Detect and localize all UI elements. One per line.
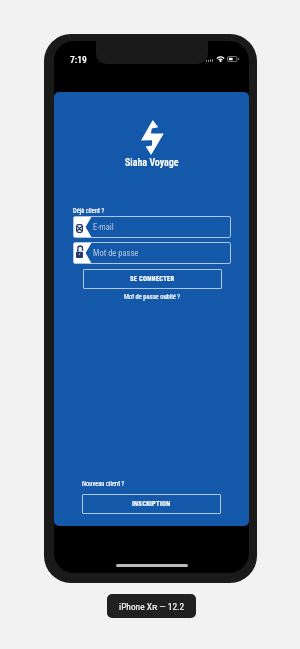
- button[interactable]: Email: [73, 216, 231, 238]
- button[interactable]: Password: [73, 242, 231, 264]
- staticText: Déjà client ?: [73, 207, 105, 215]
- staticText: SE CONNECTER: [130, 275, 175, 283]
- staticText: INSCRIPTION: [132, 500, 171, 508]
- staticText: Siaha Voyage: [125, 157, 179, 169]
- staticText: 7:19: [70, 54, 87, 65]
- staticText: iPhone Xʀ — 12.2: [119, 600, 185, 613]
- button[interactable]: INSCRIPTION: [82, 494, 221, 514]
- button[interactable]: SE CONNECTER: [83, 269, 222, 289]
- staticText: E-mail: [93, 222, 114, 232]
- button[interactable]: Mot de passe oublié ?: [73, 293, 231, 301]
- staticText: Mot de passe: [93, 248, 139, 258]
- staticText: Nouveau client ?: [82, 480, 125, 488]
- other: Password: [76, 246, 83, 258]
- other: Email: [76, 224, 83, 233]
